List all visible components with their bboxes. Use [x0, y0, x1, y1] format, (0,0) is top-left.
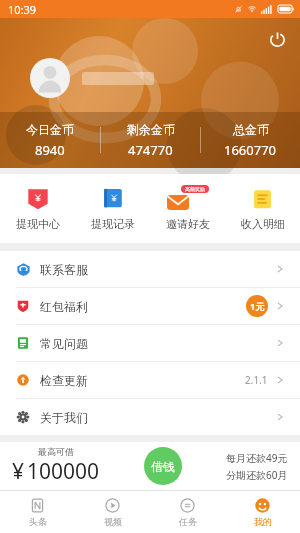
- staticText: 474770: [128, 141, 173, 159]
- staticText: 常见问题: [40, 336, 88, 351]
- staticText: 联系客服: [40, 262, 88, 277]
- button[interactable]: 红包福利: [0, 288, 300, 324]
- button[interactable]: 联系客服: [0, 251, 300, 287]
- button[interactable]: 最高可借: [0, 442, 300, 490]
- staticText: 每月还款49元: [226, 451, 288, 465]
- staticText: 最高可借: [38, 446, 74, 457]
- staticText: 总金币: [233, 122, 269, 137]
- staticText: 100000: [27, 457, 100, 486]
- button[interactable]: 提现记录: [75, 184, 150, 233]
- staticText: 高额奖励: [185, 186, 205, 192]
- staticText: 检查更新: [40, 373, 88, 388]
- button[interactable]: 任务: [150, 491, 225, 533]
- button[interactable]: 今日金币: [0, 122, 100, 159]
- staticText: 1元: [250, 300, 265, 312]
- button[interactable]: 高额奖励: [150, 184, 225, 233]
- button[interactable]: 剩余金币: [101, 122, 200, 159]
- button[interactable]: 借钱: [144, 447, 182, 485]
- staticText: 关于我们: [40, 410, 88, 425]
- staticText: 收入明细: [241, 217, 285, 231]
- staticText: 借钱: [151, 459, 175, 474]
- button[interactable]: 提现中心: [0, 184, 75, 233]
- button[interactable]: 头条: [0, 491, 75, 533]
- staticText: 提现记录: [91, 217, 135, 231]
- staticText: 10:39: [8, 2, 37, 17]
- button[interactable]: 总金币: [201, 122, 300, 159]
- staticText: 8940: [35, 141, 65, 159]
- staticText: 视频: [104, 516, 122, 527]
- staticText: 今日金币: [26, 122, 74, 137]
- staticText: 邀请好友: [166, 217, 210, 231]
- button[interactable]: 收入明细: [225, 184, 300, 233]
- staticText: 红包福利: [40, 299, 88, 314]
- button[interactable]: 检查更新: [0, 362, 300, 398]
- staticText: 提现中心: [16, 217, 60, 231]
- button[interactable]: 视频: [75, 491, 150, 533]
- staticText: 2.1.1: [245, 373, 268, 387]
- staticText: 任务: [179, 516, 197, 527]
- staticText: ¥: [12, 457, 25, 486]
- button[interactable]: 我的: [225, 491, 300, 533]
- staticText: 分期还款60月: [226, 468, 288, 482]
- button[interactable]: Logout: [264, 26, 290, 52]
- staticText: 头条: [29, 516, 47, 527]
- staticText: 我的: [254, 516, 272, 527]
- button[interactable]: [30, 58, 70, 98]
- staticText: 1660770: [224, 141, 277, 159]
- button[interactable]: 常见问题: [0, 325, 300, 361]
- staticText: 剩余金币: [127, 122, 175, 137]
- button[interactable]: 关于我们: [0, 399, 300, 435]
